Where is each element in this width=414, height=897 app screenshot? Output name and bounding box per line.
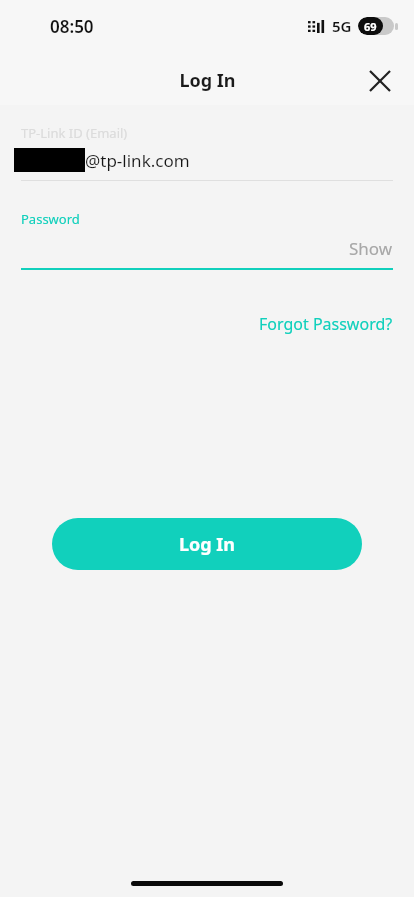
button[interactable]: @tp-link.com bbox=[0, 147, 414, 173]
staticText: Show bbox=[349, 237, 393, 260]
staticText: 08:50 bbox=[50, 15, 94, 38]
button[interactable]: Log In bbox=[52, 518, 362, 570]
button[interactable]: Close bbox=[358, 59, 402, 103]
staticText: @tp-link.com bbox=[85, 149, 190, 172]
staticText: Password bbox=[21, 210, 80, 228]
button[interactable]: Forgot Password? bbox=[259, 313, 393, 335]
staticText: 69 bbox=[364, 19, 377, 34]
staticText: Log In bbox=[179, 532, 236, 557]
staticText: Log In bbox=[179, 68, 236, 93]
staticText: Forgot Password? bbox=[259, 313, 393, 335]
staticText: TP-Link ID (Email) bbox=[21, 124, 128, 142]
button[interactable]: Show bbox=[349, 237, 393, 260]
staticText: 5G bbox=[332, 16, 352, 36]
